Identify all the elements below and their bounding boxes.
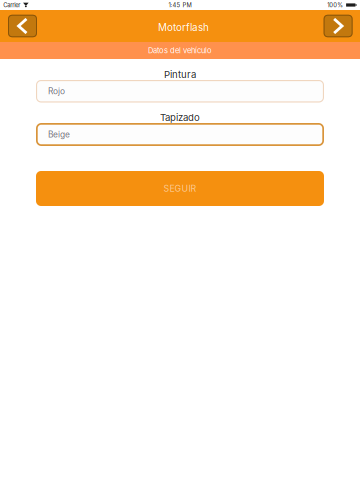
button[interactable]: Rojo (36, 80, 324, 102)
staticText: SEGUIR (163, 183, 196, 194)
staticText: Beige (48, 129, 70, 140)
staticText: Tapizado (160, 112, 200, 123)
staticText: Pintura (164, 69, 196, 80)
button[interactable]: SEGUIR (36, 171, 324, 206)
staticText: Carrier (3, 1, 20, 9)
button[interactable]: Beige (36, 123, 324, 146)
staticText: Datos del vehículo (148, 46, 212, 55)
button[interactable]: Siguiente (324, 15, 353, 37)
staticText: Rojo (48, 86, 65, 96)
staticText: Motorflash (158, 21, 209, 33)
staticText: 1:45 PM (168, 1, 191, 9)
staticText: 100% (327, 1, 343, 9)
button[interactable]: Atrás (8, 15, 37, 37)
